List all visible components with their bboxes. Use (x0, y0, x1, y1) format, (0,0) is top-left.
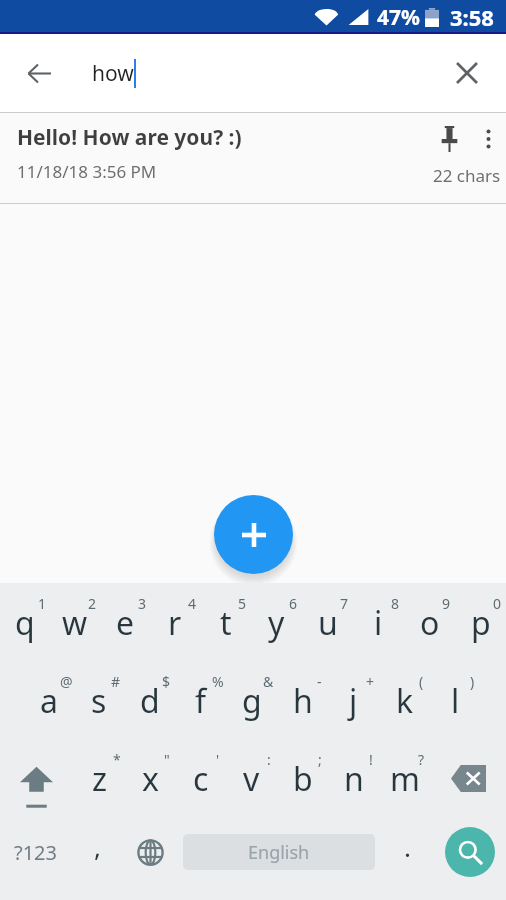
staticText: e (116, 601, 135, 645)
staticText: u (318, 601, 338, 645)
button[interactable]: 5 (200, 583, 251, 661)
staticText: 0 (493, 594, 502, 613)
staticText: 3:58 (450, 2, 494, 32)
button[interactable]: 1 (0, 583, 50, 661)
staticText: q (15, 601, 35, 645)
staticText: : (267, 750, 271, 769)
staticText: w (62, 601, 88, 645)
staticText: n (344, 757, 364, 801)
button[interactable]: Add note (214, 495, 293, 574)
staticText: ( (419, 672, 424, 691)
button[interactable]: Change language (124, 812, 177, 892)
staticText: y (268, 601, 285, 645)
staticText: 5 (238, 594, 247, 613)
staticText: g (242, 679, 262, 723)
button[interactable]: @ (24, 661, 74, 739)
staticText: ? (418, 750, 425, 769)
staticText: 8 (391, 594, 400, 613)
staticText: p (471, 601, 491, 645)
staticText: 7 (340, 594, 349, 613)
staticText: . (404, 829, 411, 864)
button[interactable]: + (328, 661, 379, 739)
staticText: 1 (38, 594, 47, 613)
staticText: Hello! How are you? :) (17, 123, 242, 152)
button[interactable]: % (175, 661, 226, 739)
button[interactable]: Back (0, 34, 78, 112)
staticText: t (220, 601, 232, 645)
staticText: ! (369, 750, 373, 769)
staticText: h (293, 679, 313, 723)
staticText: 22 chars (433, 164, 501, 187)
staticText: l (451, 679, 460, 723)
button[interactable]: # (74, 661, 124, 739)
button[interactable]: Pin note (432, 122, 466, 156)
staticText: " (164, 750, 170, 769)
button[interactable]: 7 (302, 583, 353, 661)
staticText: 2 (88, 594, 97, 613)
staticText: o (420, 601, 440, 645)
staticText: % (212, 672, 224, 691)
staticText: 4 (188, 594, 197, 613)
staticText: r (168, 601, 182, 645)
staticText: # (111, 672, 121, 691)
staticText: English (248, 840, 310, 865)
staticText: b (293, 757, 313, 801)
button[interactable]: Search (434, 812, 506, 892)
staticText: i (374, 601, 383, 645)
button[interactable]: . (381, 812, 434, 892)
staticText: s (91, 679, 107, 723)
button[interactable]: * (75, 739, 125, 817)
button[interactable]: Backspace (430, 739, 506, 817)
staticText: 6 (289, 594, 298, 613)
button[interactable]: ; (277, 739, 328, 817)
button[interactable]: 9 (404, 583, 455, 661)
staticText: 47% (377, 3, 420, 32)
staticText: v (243, 757, 260, 801)
button[interactable]: Clear search (434, 34, 500, 112)
staticText: * (113, 750, 121, 769)
button[interactable]: ?123 (0, 812, 71, 892)
staticText: 3 (138, 594, 147, 613)
staticText: ?123 (14, 839, 57, 866)
staticText: & (263, 672, 274, 691)
button[interactable]: ! (328, 739, 379, 817)
button[interactable]: 4 (150, 583, 200, 661)
button[interactable]: 3 (100, 583, 150, 661)
staticText: how (92, 59, 134, 88)
button[interactable]: : (226, 739, 277, 817)
staticText: a (40, 679, 58, 723)
staticText: ) (470, 672, 475, 691)
staticText: 11/18/18 3:56 PM (17, 160, 157, 183)
staticText: j (349, 679, 358, 723)
staticText: m (390, 757, 420, 801)
button[interactable]: 0 (455, 583, 506, 661)
staticText: $ (162, 672, 171, 691)
staticText: + (366, 672, 375, 691)
button[interactable]: " (125, 739, 175, 817)
staticText: c (193, 757, 209, 801)
button[interactable]: - (277, 661, 328, 739)
button[interactable]: Shift (0, 739, 75, 817)
staticText: 9 (442, 594, 451, 613)
staticText: x (142, 757, 159, 801)
button[interactable]: , (71, 812, 124, 892)
staticText: ; (318, 750, 322, 769)
button[interactable]: ? (379, 739, 430, 817)
button[interactable]: 8 (353, 583, 404, 661)
button[interactable]: ) (430, 661, 481, 739)
staticText: k (396, 679, 414, 723)
staticText: d (140, 679, 160, 723)
button[interactable]: 2 (50, 583, 100, 661)
button[interactable]: Hello! How are you? :) (0, 112, 506, 204)
button[interactable]: $ (124, 661, 175, 739)
button[interactable]: English (183, 834, 375, 870)
button[interactable]: ( (379, 661, 430, 739)
staticText: , (94, 829, 101, 864)
button[interactable]: ' (175, 739, 226, 817)
button[interactable]: 6 (251, 583, 302, 661)
staticText: ' (216, 750, 220, 769)
button[interactable]: More options (471, 122, 505, 156)
staticText: - (317, 672, 322, 691)
button[interactable]: & (226, 661, 277, 739)
staticText: @ (60, 672, 73, 691)
